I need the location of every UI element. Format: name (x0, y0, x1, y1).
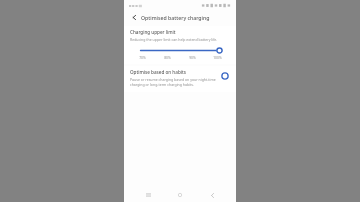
staticText: Optimised battery charging (141, 14, 210, 21)
button[interactable]: Optimise based on habits (124, 66, 236, 92)
staticText: 90% (189, 55, 196, 60)
button[interactable]: Back (204, 189, 220, 201)
button[interactable]: Home (172, 189, 188, 201)
staticText: Pause or resume charging based on your n… (130, 77, 216, 87)
staticText: Reducing the upper limit can help extend… (130, 37, 218, 42)
staticText: Charging upper limit (130, 29, 176, 35)
staticText: 70% (139, 55, 146, 60)
button[interactable]: Charging upper limit slider (130, 47, 230, 54)
button[interactable]: Optimise based on habits toggle (220, 71, 230, 81)
staticText: 80% (164, 55, 171, 60)
staticText: Optimise based on habits (130, 69, 186, 75)
button[interactable]: Back (130, 13, 139, 22)
staticText: 100% (213, 55, 222, 60)
button[interactable]: Recent apps (140, 189, 156, 201)
